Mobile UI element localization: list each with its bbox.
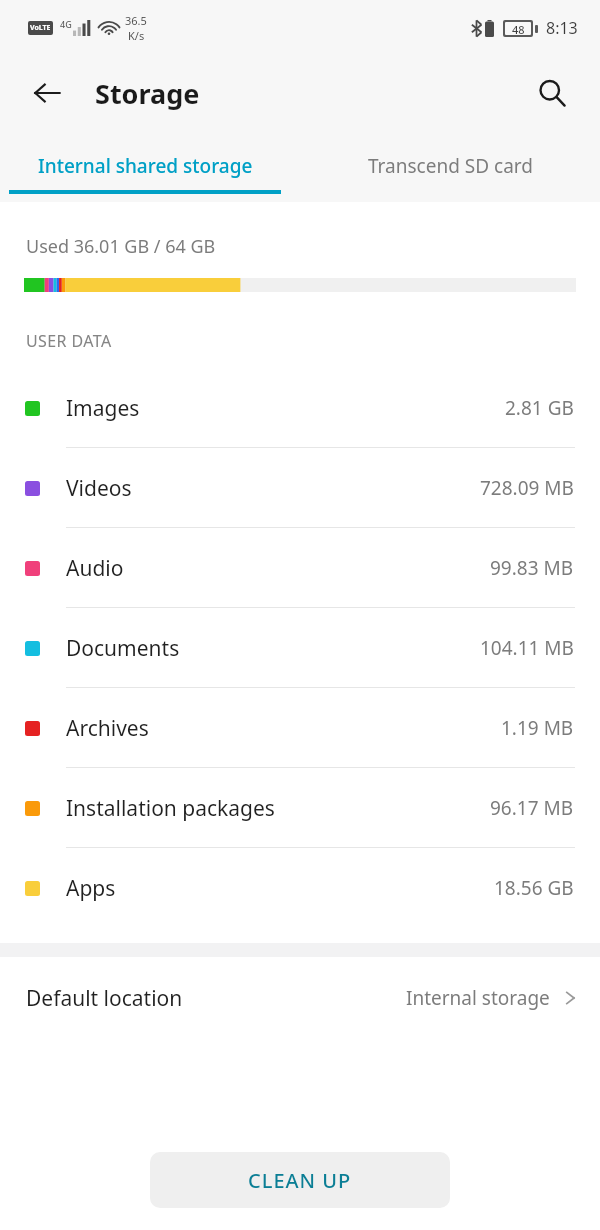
staticText: 18.56 GB <box>494 875 574 901</box>
staticText: 104.11 MB <box>480 635 574 661</box>
staticText: Internal storage <box>406 985 550 1011</box>
staticText: 8:13 <box>546 17 578 39</box>
button[interactable]: Archives <box>0 688 600 768</box>
staticText: VoLTE <box>30 23 51 33</box>
staticText: Documents <box>66 634 180 663</box>
staticText: 1.19 MB <box>501 715 574 741</box>
staticText: Internal shared storage <box>38 153 253 179</box>
button[interactable]: Transcend SD card <box>290 130 600 202</box>
staticText: Videos <box>66 474 132 503</box>
button[interactable]: Search <box>528 69 576 117</box>
staticText: 728.09 MB <box>480 475 574 501</box>
staticText: 2.81 GB <box>505 395 574 421</box>
staticText: 48 <box>512 22 525 35</box>
button[interactable]: CLEAN UP <box>150 1152 450 1208</box>
staticText: K/s <box>128 28 145 43</box>
staticText: Default location <box>26 984 183 1013</box>
button[interactable]: Installation packages <box>0 768 600 848</box>
staticText: 36.5 <box>125 13 147 28</box>
button[interactable]: Audio <box>0 528 600 608</box>
staticText: USER DATA <box>26 330 112 352</box>
staticText: Images <box>66 394 140 423</box>
staticText: CLEAN UP <box>248 1167 352 1194</box>
button[interactable]: Apps <box>0 848 600 928</box>
button[interactable]: Documents <box>0 608 600 688</box>
staticText: Storage <box>95 75 200 112</box>
button[interactable]: Images <box>0 368 600 448</box>
button[interactable]: Videos <box>0 448 600 528</box>
button[interactable]: Default location <box>0 957 600 1039</box>
staticText: 96.17 MB <box>490 795 574 821</box>
staticText: Used 36.01 GB / 64 GB <box>26 234 216 259</box>
staticText: Apps <box>66 874 116 903</box>
staticText: 99.83 MB <box>490 555 574 581</box>
button[interactable]: Back <box>23 69 71 117</box>
staticText: Transcend SD card <box>368 153 533 179</box>
button[interactable]: Internal shared storage <box>0 130 290 202</box>
staticText: Installation packages <box>66 794 275 823</box>
staticText: Audio <box>66 554 124 583</box>
staticText: Archives <box>66 714 149 743</box>
staticText: 4G <box>60 18 72 30</box>
